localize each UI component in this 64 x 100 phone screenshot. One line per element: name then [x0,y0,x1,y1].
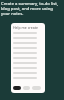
button[interactable] [23,86,30,90]
staticText: Help me create [13,25,38,30]
staticText: Create a summary, to-do list, blog post,… [1,1,62,16]
button[interactable] [32,86,41,90]
button[interactable] [13,86,21,90]
